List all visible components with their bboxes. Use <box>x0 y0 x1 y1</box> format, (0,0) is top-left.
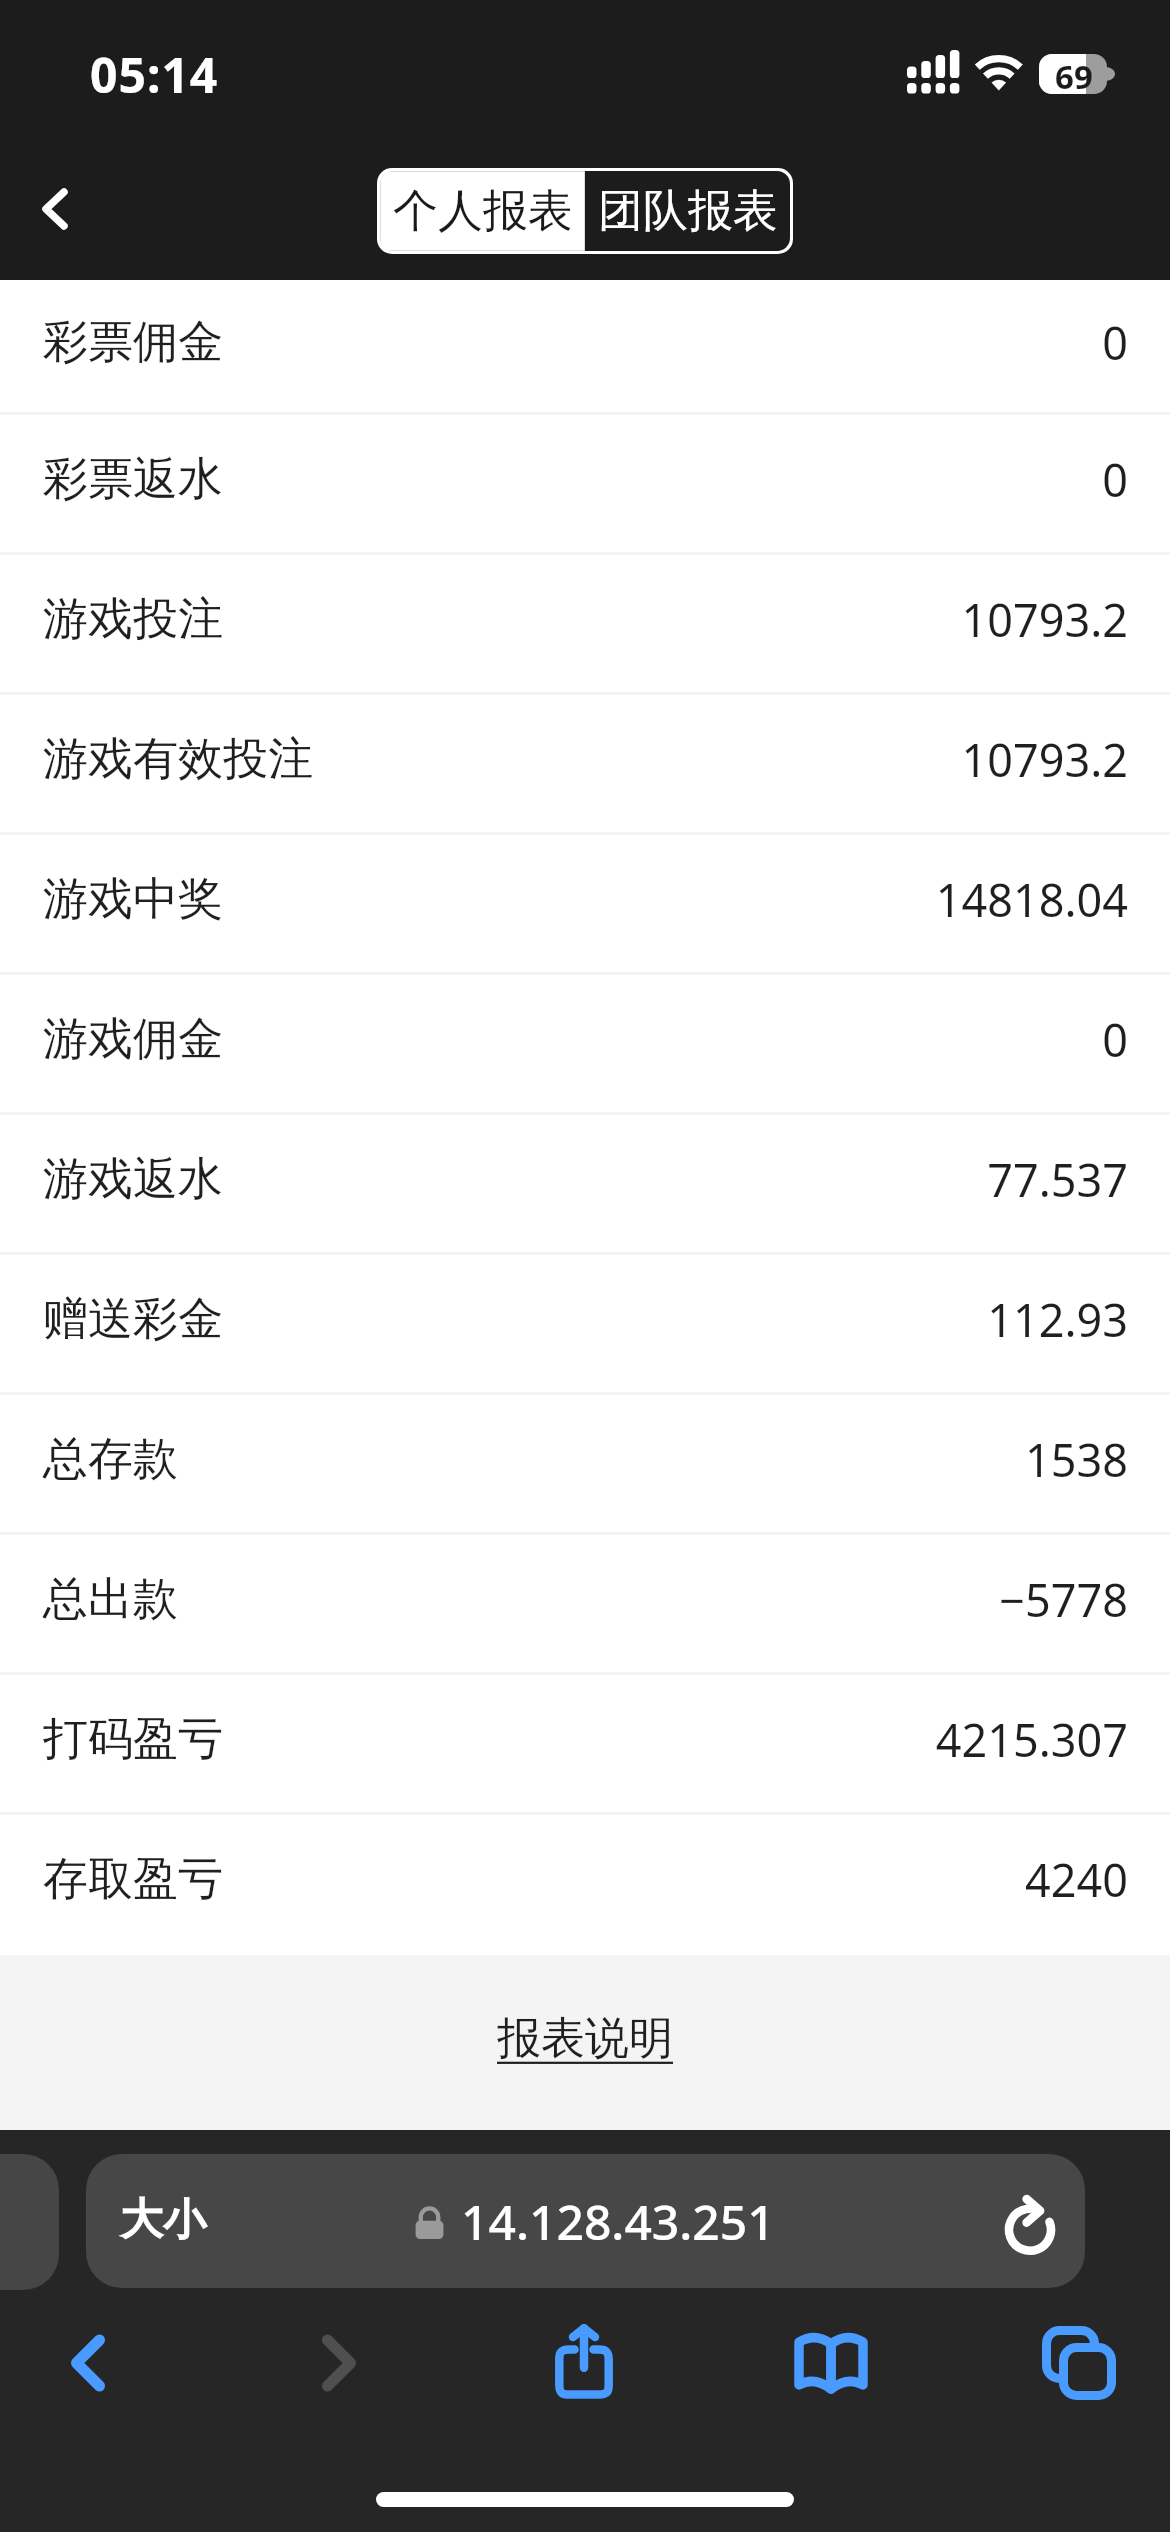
staticText: 112.93 <box>987 1289 1128 1350</box>
staticText: 14.128.43.251 <box>461 2189 775 2254</box>
staticText: 69 <box>1055 54 1093 94</box>
staticText: 1538 <box>1025 1429 1128 1490</box>
button[interactable]: Tabs <box>1019 2303 1139 2423</box>
button[interactable]: 大小 <box>86 2154 1085 2288</box>
button[interactable]: 报表说明 <box>497 2011 673 2066</box>
button[interactable]: 彩票返水 <box>0 415 1170 552</box>
button[interactable]: 赠送彩金 <box>0 1255 1170 1392</box>
staticText: 游戏中奖 <box>43 871 223 928</box>
button[interactable]: 团队报表 <box>585 171 790 251</box>
button[interactable]: Reload <box>985 2176 1075 2266</box>
staticText: 报表说明 <box>497 2011 673 2066</box>
staticText: 团队报表 <box>598 183 778 240</box>
staticText: 0 <box>1102 449 1128 510</box>
staticText: 彩票返水 <box>43 451 223 508</box>
staticText: 游戏返水 <box>43 1151 223 1208</box>
staticText: 彩票佣金 <box>43 314 223 371</box>
button[interactable]: 彩票佣金 <box>0 280 1170 412</box>
button[interactable]: 存取盈亏 <box>0 1815 1170 1952</box>
staticText: 游戏投注 <box>43 591 223 648</box>
button[interactable]: 总出款 <box>0 1535 1170 1672</box>
staticText: 14818.04 <box>935 869 1128 930</box>
button[interactable]: 游戏中奖 <box>0 835 1170 972</box>
staticText: 0 <box>1102 312 1128 373</box>
button[interactable]: 游戏佣金 <box>0 975 1170 1112</box>
staticText: 游戏佣金 <box>43 1011 223 1068</box>
button[interactable]: Back <box>28 2303 148 2423</box>
staticText: −5778 <box>999 1569 1128 1630</box>
staticText: 赠送彩金 <box>43 1291 223 1348</box>
staticText: 10793.2 <box>961 589 1128 650</box>
button[interactable]: 游戏有效投注 <box>0 695 1170 832</box>
button[interactable]: Share <box>524 2303 644 2423</box>
staticText: 总出款 <box>43 1571 178 1628</box>
staticText: 10793.2 <box>961 729 1128 790</box>
staticText: 总存款 <box>43 1431 178 1488</box>
button[interactable]: 游戏返水 <box>0 1115 1170 1252</box>
staticText: 游戏有效投注 <box>43 731 313 788</box>
staticText: 4240 <box>1025 1849 1128 1910</box>
button[interactable]: Bookmarks <box>771 2303 891 2423</box>
button[interactable]: Forward <box>279 2303 399 2423</box>
staticText: 存取盈亏 <box>43 1851 223 1908</box>
staticText: 大小 <box>120 2193 206 2247</box>
staticText: 个人报表 <box>393 183 573 240</box>
button[interactable]: Back <box>4 154 114 264</box>
staticText: 4215.307 <box>935 1709 1128 1770</box>
button[interactable]: 打码盈亏 <box>0 1675 1170 1812</box>
button[interactable]: 游戏投注 <box>0 555 1170 692</box>
staticText: 0 <box>1102 1009 1128 1070</box>
button[interactable]: 总存款 <box>0 1395 1170 1532</box>
staticText: 05:14 <box>90 42 219 107</box>
staticText: 打码盈亏 <box>43 1711 223 1768</box>
button[interactable]: 个人报表 <box>381 172 584 250</box>
staticText: 77.537 <box>987 1149 1128 1210</box>
